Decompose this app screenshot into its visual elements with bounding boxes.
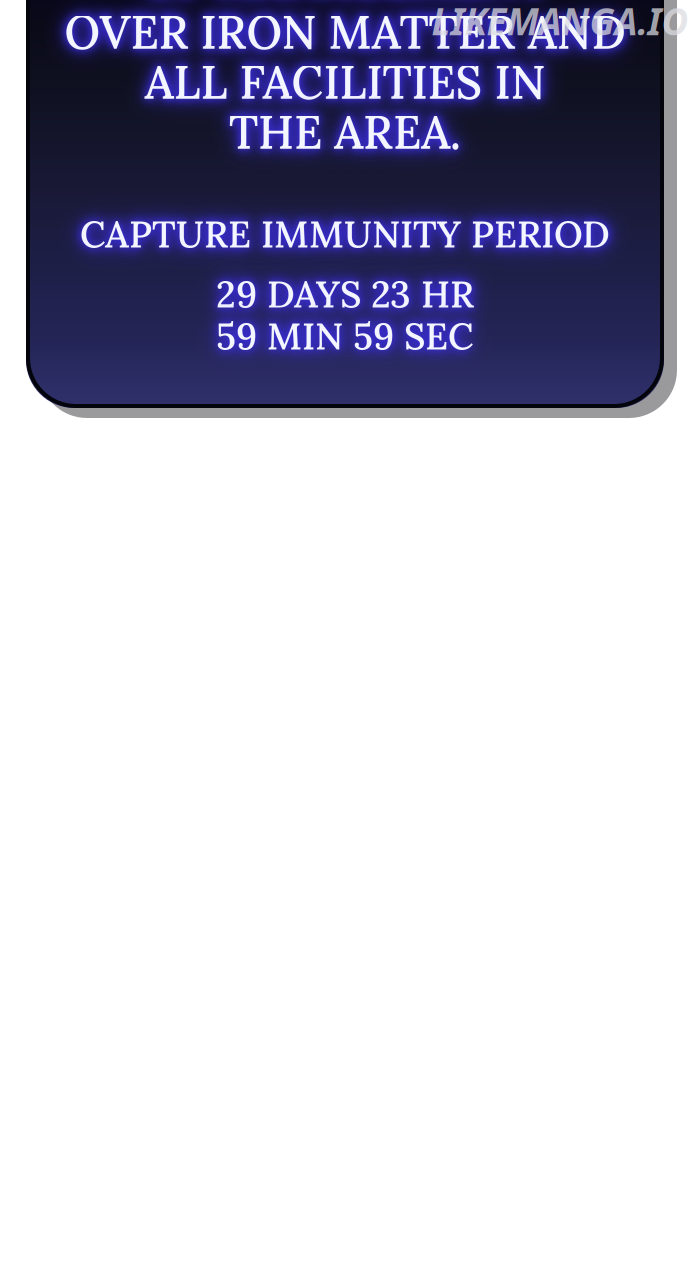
- staticText: CAPTURE IMMUNITY PERIOD: [80, 210, 610, 257]
- staticText: LIKEMANGA.IO: [431, 0, 688, 46]
- staticText: OF MANAGEMENT: [142, 0, 547, 7]
- staticText: 29 DAYS 23 HR: [216, 270, 474, 317]
- staticText: THE AREA.: [229, 103, 461, 161]
- staticText: ALL FACILITIES IN: [144, 53, 545, 111]
- staticText: 59 MIN 59 SEC: [216, 312, 474, 359]
- staticText: OVER IRON MATTER AND: [64, 3, 625, 61]
